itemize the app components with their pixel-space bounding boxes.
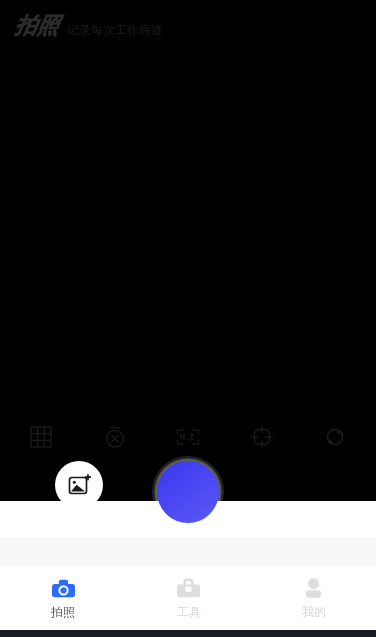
- button[interactable]: 拍照: [0, 566, 126, 630]
- button[interactable]: Take photo: [152, 456, 224, 528]
- staticText: 拍照: [51, 604, 75, 619]
- staticText: 工具: [177, 604, 201, 619]
- staticText: 我的: [302, 604, 326, 619]
- staticText: 拍照: [14, 12, 58, 40]
- button[interactable]: Switch camera: [313, 415, 357, 459]
- button[interactable]: Open gallery: [55, 461, 103, 509]
- button[interactable]: Aspect ratio 4 to 3: [166, 415, 210, 459]
- button[interactable]: Timer off: [93, 415, 137, 459]
- button[interactable]: 我的: [251, 566, 376, 630]
- button[interactable]: 工具: [126, 566, 251, 630]
- staticText: 记录每次工作痕迹: [67, 22, 163, 37]
- button[interactable]: Focus: [240, 415, 284, 459]
- button[interactable]: Grid lines: [19, 415, 63, 459]
